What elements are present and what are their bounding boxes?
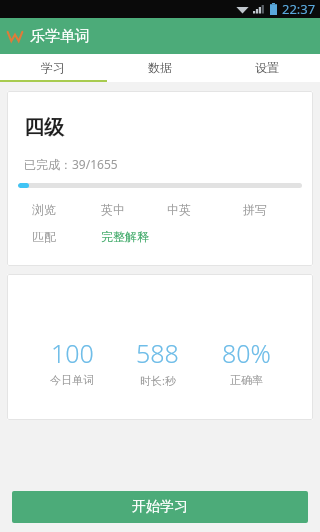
staticText: 拼写 — [243, 202, 267, 217]
button[interactable]: 英中 — [101, 202, 125, 217]
staticText: 100 — [51, 336, 94, 370]
staticText: 22:37 — [282, 0, 316, 18]
button[interactable]: 设置 — [213, 54, 320, 80]
staticText: 浏览 — [32, 202, 56, 217]
staticText: 四级 — [24, 115, 64, 140]
button[interactable]: 完整解释 — [101, 229, 149, 244]
other: App logo — [7, 30, 23, 43]
button[interactable]: 浏览 — [32, 202, 56, 217]
button[interactable]: 开始学习 — [12, 491, 308, 523]
button[interactable]: 拼写 — [243, 202, 267, 217]
button[interactable]: 学习 — [0, 54, 106, 80]
staticText: 乐学单词 — [30, 27, 90, 46]
staticText: 正确率 — [230, 373, 263, 387]
staticText: 匹配 — [32, 229, 56, 244]
button[interactable]: 数据 — [106, 54, 213, 80]
staticText: 80% — [222, 336, 271, 370]
staticText: 中英 — [167, 202, 191, 217]
staticText: 设置 — [255, 60, 279, 75]
staticText: 数据 — [148, 60, 172, 75]
button[interactable]: 匹配 — [32, 229, 56, 244]
staticText: 英中 — [101, 202, 125, 217]
staticText: 已完成：39/1655 — [24, 156, 118, 172]
button[interactable]: 中英 — [167, 202, 191, 217]
staticText: 学习 — [41, 60, 65, 75]
staticText: 开始学习 — [132, 498, 188, 516]
staticText: 588 — [136, 336, 179, 370]
staticText: 今日单词 — [50, 373, 94, 387]
staticText: 时长:秒 — [140, 373, 176, 388]
staticText: 完整解释 — [101, 229, 149, 244]
